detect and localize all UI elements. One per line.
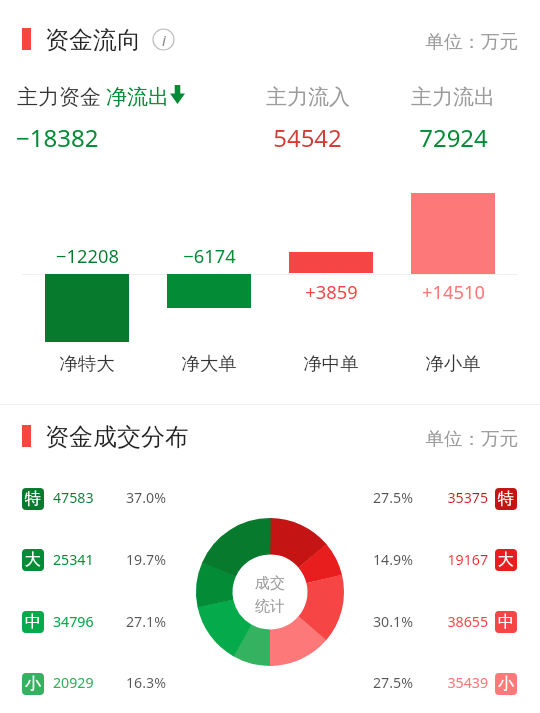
staticText: 净小单 [425,352,481,375]
staticText: −18382 [16,121,99,154]
staticText: 大 [25,550,41,570]
staticText: 单位：万元 [425,30,518,53]
staticText: 主力流入 [266,84,350,110]
staticText: 37.0% [126,488,166,507]
staticText: 54542 [273,121,342,154]
staticText: 主力资金 [17,84,101,110]
staticText: −6174 [183,243,236,268]
staticText: 主力流出 [411,84,495,110]
staticText: i [162,30,166,50]
staticText: 35439 [447,673,488,692]
staticText: 47583 [53,488,94,507]
button[interactable]: 说明 [151,27,176,52]
staticText: 27.5% [373,673,413,692]
button[interactable] [0,468,540,529]
staticText: 资金成交分布 [45,422,189,452]
staticText: −12208 [56,243,119,268]
staticText: 19.7% [126,550,166,569]
staticText: 净特大 [59,352,115,375]
staticText: 净流出 [106,84,169,110]
staticText: 净中单 [303,352,359,375]
staticText: 资金流向 [45,25,141,55]
staticText: +3859 [305,279,358,304]
staticText: 小 [25,674,41,694]
staticText: 14.9% [373,550,413,569]
staticText: 20929 [53,673,94,692]
staticText: 中 [498,612,514,632]
staticText: 单位：万元 [425,427,518,450]
staticText: 30.1% [373,612,413,631]
staticText: +14510 [422,279,485,304]
button[interactable] [0,529,540,590]
staticText: 38655 [447,612,488,631]
staticText: 小 [498,674,514,694]
staticText: 16.3% [126,673,166,692]
staticText: 72924 [419,121,488,154]
staticText: 特 [498,489,514,509]
button[interactable] [0,653,540,713]
staticText: 27.1% [126,612,166,631]
staticText: 净大单 [181,352,237,375]
staticText: 19167 [447,550,488,569]
staticText: 25341 [53,550,94,569]
staticText: 统计 [255,597,285,616]
staticText: 中 [25,612,41,632]
staticText: 大 [498,550,514,570]
staticText: 34796 [53,612,94,631]
staticText: 特 [25,489,41,509]
staticText: 成交 [255,574,285,593]
staticText: 35375 [447,488,488,507]
button[interactable] [0,591,540,652]
staticText: 27.5% [373,488,413,507]
